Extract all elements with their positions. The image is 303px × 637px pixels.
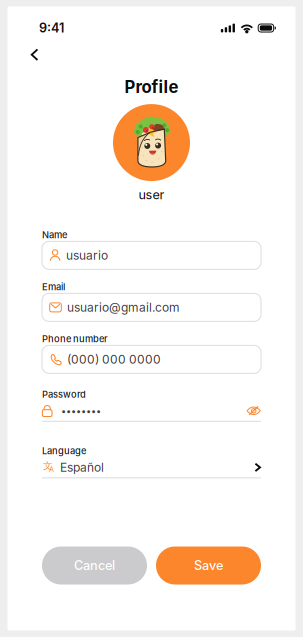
staticText: Profile [124,77,178,97]
staticText: Language [42,445,86,456]
button[interactable]: 文 [42,460,261,478]
button[interactable]: Save [156,546,261,584]
staticText: Email [42,281,65,292]
staticText: •••••••• [61,405,101,416]
staticText: Name [42,229,67,240]
staticText: user [138,187,164,202]
button[interactable]: usuario [42,241,261,269]
staticText: A [49,465,54,474]
staticText: (000) 000 0000 [67,352,161,367]
staticText: usuario@gmail.com [67,300,180,315]
button[interactable]: •••••••• [42,404,261,422]
button[interactable]: usuario@gmail.com [42,293,261,321]
button[interactable]: Cancel [42,546,147,584]
staticText: Password [42,389,86,400]
staticText: usuario [66,248,108,263]
staticText: Español [60,460,104,475]
button[interactable]: (000) 000 0000 [42,345,261,373]
staticText: 9:41 [39,20,64,36]
button[interactable]: Back [23,43,45,66]
staticText: Cancel [74,558,115,573]
staticText: 文 [43,460,52,472]
staticText: Save [194,558,223,573]
staticText: Phone number [42,333,108,344]
